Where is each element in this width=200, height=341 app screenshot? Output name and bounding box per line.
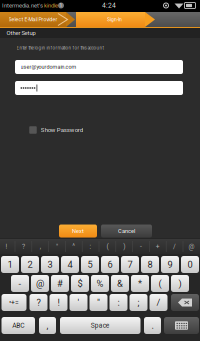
staticText: ? [22,243,25,250]
button[interactable]: " [49,239,65,254]
staticText: Sign-In [107,16,122,22]
button[interactable]: 3 [41,256,59,273]
button[interactable]: Other Setup [4,27,38,38]
button[interactable]: Cancel [101,224,152,237]
staticText: + [156,243,160,250]
button[interactable]: + [150,239,166,254]
staticText: ( [158,278,161,289]
button[interactable]: , [32,239,48,254]
button[interactable]: ? [15,239,31,254]
staticText: Enter the login information for this acc… [16,45,103,51]
button[interactable]: 8 [141,256,159,273]
staticText: @ [36,278,44,289]
button[interactable]: % [91,275,109,292]
button[interactable]: Next [59,224,97,237]
button[interactable]: 7 [121,256,139,273]
staticText: Other Setup [6,30,35,36]
staticText: ABC [12,322,24,329]
button[interactable]: ) [171,275,189,292]
button[interactable]: Select E-Mail Provider [0,12,66,27]
staticText: Show Password [41,126,83,133]
button[interactable]: ! [49,294,67,311]
staticText: ! [6,243,8,250]
button[interactable]: . [144,317,161,334]
button[interactable]: 1 [1,256,19,273]
staticText: 8 [147,259,152,270]
staticText: : [117,297,119,308]
button[interactable]: ^ [66,239,82,254]
staticText: ; [137,297,139,308]
button[interactable]: Space [60,317,140,334]
staticText: : [90,243,92,250]
button[interactable]: - [133,239,149,254]
staticText: " [56,243,58,250]
staticText: ( [106,243,108,250]
staticText: 5 [87,259,92,270]
button[interactable]: Sign-In [76,12,145,27]
staticText: , [40,243,41,250]
button[interactable]: ( [151,275,169,292]
staticText: ' [77,297,79,308]
button[interactable]: 4 [61,256,79,273]
button[interactable]: ) [116,239,132,254]
button[interactable]: , [39,317,56,334]
button[interactable]: 5 [81,256,99,273]
button[interactable]: @ [183,239,199,254]
button[interactable]: 2 [21,256,39,273]
staticText: % [96,278,103,289]
button[interactable]: : [109,294,127,311]
button[interactable]: Hide keyboard [164,317,199,334]
staticText: user@yourdomain.com [20,64,76,70]
staticText: 7 [127,259,132,270]
button[interactable]: " [89,294,107,311]
staticText: ? [36,297,40,308]
button[interactable]: •+= [1,294,26,311]
staticText: / [173,243,176,250]
staticText: & [117,278,123,289]
staticText: @ [188,243,194,250]
staticText: 1 [59,3,62,8]
button[interactable]: ! [0,239,15,254]
button[interactable]: - [11,275,29,292]
button[interactable]: @ [31,275,49,292]
staticText: / [156,297,160,308]
button[interactable]: & [111,275,129,292]
staticText: 6 [107,259,112,270]
button[interactable]: Show Password [29,126,83,134]
staticText: 3 [47,259,52,270]
button[interactable]: * [131,275,149,292]
staticText: . [151,320,153,331]
staticText: ) [178,278,181,289]
button[interactable]: ; [129,294,147,311]
staticText: ) [123,243,125,250]
staticText: * [138,278,142,289]
button[interactable]: ABC [1,317,35,334]
staticText: 9 [167,259,172,270]
button[interactable]: 9 [161,256,179,273]
button[interactable]: / [167,239,183,254]
button[interactable]: ( [99,239,115,254]
staticText: ! [57,297,59,308]
button[interactable]: 6 [101,256,119,273]
button[interactable]: : [83,239,99,254]
staticText: 1 [7,259,12,270]
button[interactable]: ? [29,294,47,311]
staticText: Space [91,322,110,329]
staticText: $ [77,278,82,289]
staticText: - [18,278,21,289]
button[interactable]: ' [69,294,87,311]
button[interactable]: / [149,294,167,311]
button[interactable]: 0 [181,256,199,273]
staticText: •+= [9,299,19,306]
button[interactable]: Backspace [171,294,199,311]
staticText: Intermedia.net's [2,2,44,9]
staticText: Select E-Mail Provider [8,16,57,22]
button[interactable]: $ [71,275,89,292]
staticText: 4 [67,259,72,270]
staticText: 2 [27,259,32,270]
staticText: Cancel [118,228,135,234]
staticText: kindle [44,2,58,9]
staticText: 0 [187,259,192,270]
staticText: # [57,278,63,289]
button[interactable]: # [51,275,69,292]
